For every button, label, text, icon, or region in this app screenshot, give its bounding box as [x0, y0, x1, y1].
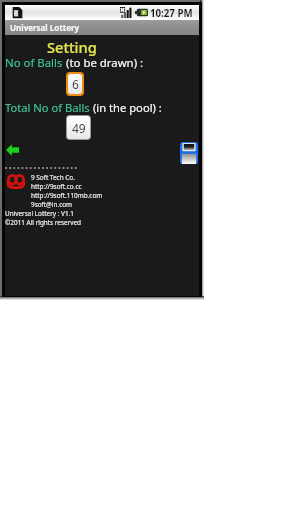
- button[interactable]: Back: [5, 142, 20, 157]
- staticText: 10:27 PM: [150, 7, 193, 20]
- staticText: (to be drawn) :: [66, 55, 144, 71]
- staticText: Setting: [47, 37, 97, 57]
- staticText: http://9soft.110mb.com: [31, 191, 103, 200]
- staticText: Total No of Balls: [5, 100, 93, 115]
- button[interactable]: 6: [68, 74, 82, 94]
- staticText: ©2011 All rights reserved: [5, 218, 82, 227]
- staticText: 9 Soft Tech Co.: [31, 173, 75, 182]
- staticText: 9soft@in.com: [31, 200, 73, 209]
- staticText: http://9soft.co.cc: [31, 182, 82, 191]
- staticText: 6: [72, 76, 79, 92]
- staticText: Universal Lottery: [10, 22, 80, 33]
- staticText: Universal Lottery : V1.1: [5, 209, 74, 218]
- staticText: No of Balls: [5, 55, 66, 71]
- button[interactable]: 49: [67, 116, 90, 139]
- staticText: 49: [72, 120, 86, 136]
- button[interactable]: Save: [178, 140, 199, 166]
- staticText: (in the pool) :: [93, 100, 162, 115]
